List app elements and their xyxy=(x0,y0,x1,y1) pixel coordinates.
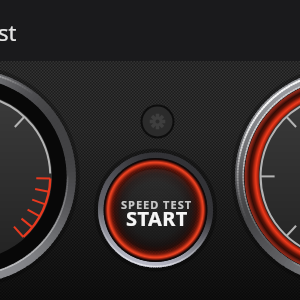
staticText: Internet Speed Test xyxy=(0,17,17,47)
staticText: START xyxy=(126,205,188,232)
staticText: SPEED TEST xyxy=(121,197,193,212)
button[interactable]: SPEED TEST xyxy=(98,153,213,268)
button[interactable]: Settings xyxy=(142,106,173,137)
